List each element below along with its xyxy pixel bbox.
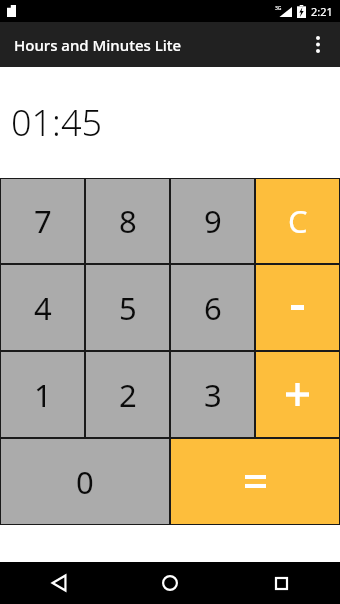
staticText: 7	[34, 200, 52, 242]
staticText: 3	[204, 374, 222, 416]
staticText: 2:21	[311, 4, 333, 19]
button[interactable]: Home	[149, 562, 191, 604]
button[interactable]: 5	[86, 265, 169, 350]
button[interactable]: 8	[86, 179, 169, 263]
staticText: 5	[119, 287, 137, 329]
button[interactable]: 6	[171, 265, 254, 350]
button[interactable]: Recents	[260, 562, 302, 604]
staticText: 8	[119, 200, 137, 242]
staticText: Hours and Minutes Lite	[14, 35, 182, 55]
button[interactable]: Plus	[256, 352, 339, 437]
staticText: C	[288, 200, 308, 242]
button[interactable]: 0	[1, 439, 169, 524]
staticText: 01:45	[11, 98, 103, 147]
staticText: 0	[76, 461, 94, 503]
staticText: 4	[34, 287, 52, 329]
staticText: 1	[34, 374, 52, 416]
staticText: 9	[204, 200, 222, 242]
button[interactable]: 4	[1, 265, 84, 350]
button[interactable]: More options	[296, 22, 340, 67]
button[interactable]: Back	[38, 562, 80, 604]
staticText: 3G	[275, 5, 282, 12]
button[interactable]: C	[256, 179, 339, 263]
button[interactable]: 2	[86, 352, 169, 437]
button[interactable]: 1	[1, 352, 84, 437]
button[interactable]: 3	[171, 352, 254, 437]
button[interactable]: Equals	[171, 439, 339, 524]
button[interactable]: 9	[171, 179, 254, 263]
staticText: 6	[204, 287, 222, 329]
button[interactable]: Minus	[256, 265, 339, 350]
button[interactable]: 7	[1, 179, 84, 263]
staticText: 2	[119, 374, 137, 416]
